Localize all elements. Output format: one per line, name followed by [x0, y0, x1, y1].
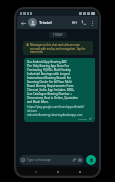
button[interactable]: TODAY	[49, 32, 67, 38]
button[interactable]: Back	[19, 19, 27, 27]
button[interactable]: Video call	[70, 18, 79, 27]
button[interactable]: Back	[32, 168, 39, 175]
button[interactable]: More options	[88, 19, 96, 27]
staticText: https://play.google.com/store/apps/detai…	[27, 105, 92, 117]
button[interactable]: Record voice message	[86, 155, 96, 165]
button[interactable]: Recent apps	[76, 168, 83, 175]
button[interactable]: Home	[54, 168, 61, 175]
staticText: Type a message	[27, 158, 51, 162]
staticText: Messages to this chat and calls are now …	[30, 43, 90, 53]
button[interactable]: Our Android App Bearing ABZ The Only Bea…	[24, 58, 95, 122]
button[interactable]: Call	[79, 18, 88, 27]
staticText: 2:35 pm	[78, 117, 88, 120]
staticText: Triatel	[39, 20, 52, 26]
button[interactable]: Type a message	[19, 155, 84, 165]
button[interactable]: Triatel	[28, 16, 70, 29]
staticText: Our Android App Bearing ABZ The Only Bea…	[27, 60, 78, 104]
button[interactable]: Messages to this chat and calls are now …	[23, 41, 93, 55]
staticText: TODAY	[53, 33, 63, 37]
